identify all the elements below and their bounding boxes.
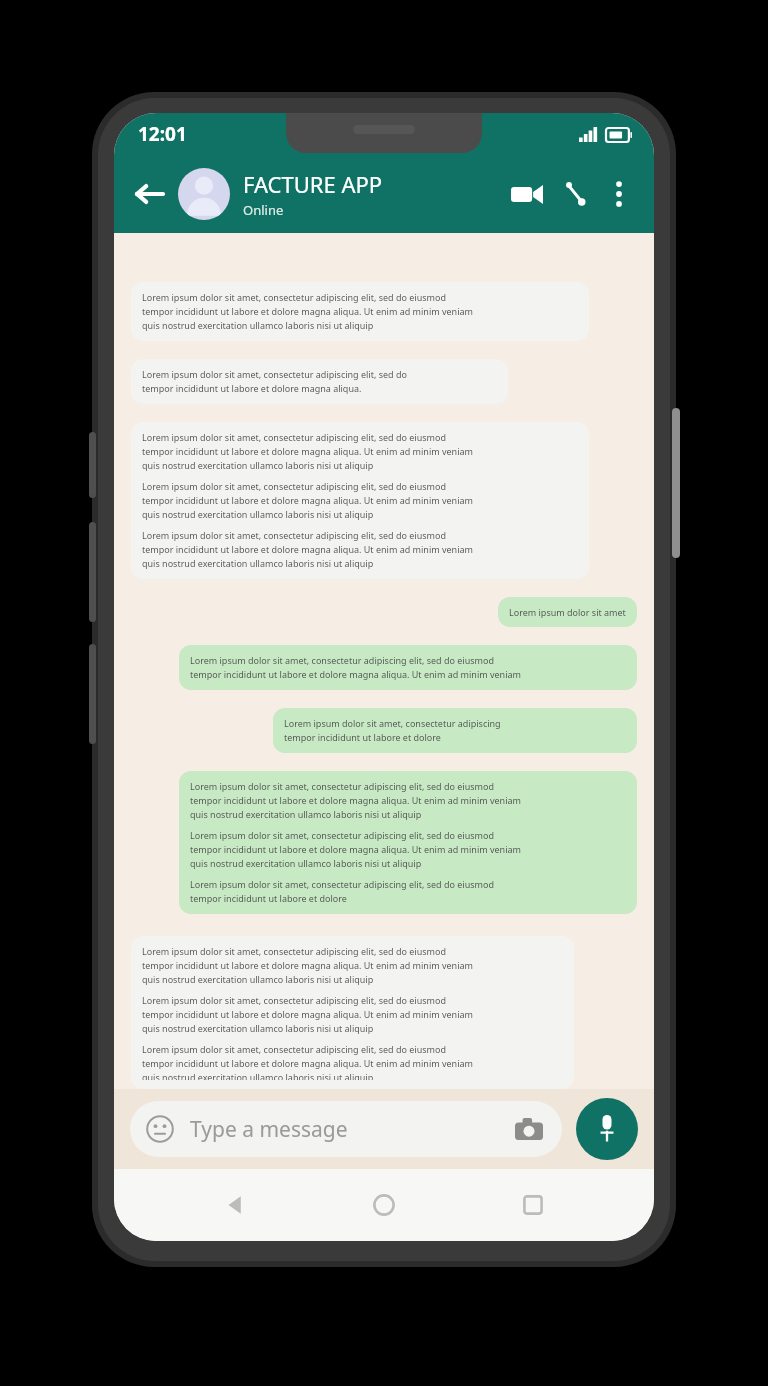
staticText: Lorem ipsum dolor sit amet, consectetur … [190,654,521,681]
staticText: Lorem ipsum dolor sit amet, consectetur … [142,431,473,472]
button[interactable]: Lorem ipsum dolor sit amet, consectetur … [179,645,637,690]
button[interactable]: More options [600,175,638,213]
button[interactable]: Lorem ipsum dolor sit amet, consectetur … [131,359,508,404]
staticText: Online [243,201,284,219]
button[interactable]: Recent apps [505,1177,561,1233]
staticText: FACTURE APP [243,169,383,199]
button[interactable]: Lorem ipsum dolor sit amet, consectetur … [179,771,637,914]
button[interactable]: Back [128,173,170,215]
staticText: Lorem ipsum dolor sit amet, consectetur … [142,529,473,570]
staticText: Lorem ipsum dolor sit amet, consectetur … [142,945,473,986]
button[interactable]: Contact photo [178,168,230,220]
button[interactable]: Home [356,1177,412,1233]
button[interactable]: Record voice message [576,1098,638,1160]
staticText: Lorem ipsum dolor sit amet, consectetur … [142,994,473,1035]
button[interactable]: Lorem ipsum dolor sit amet, consectetur … [131,282,589,341]
button[interactable]: Back [207,1177,263,1233]
button[interactable]: Voice call [554,173,596,215]
button[interactable]: Type a message [130,1101,562,1157]
staticText: Lorem ipsum dolor sit amet [509,606,626,618]
staticText: Lorem ipsum dolor sit amet, consectetur … [142,1043,473,1080]
staticText: Type a message [190,1115,512,1144]
staticText: Lorem ipsum dolor sit amet, consectetur … [190,878,494,905]
staticText: Lorem ipsum dolor sit amet, consectetur … [190,829,521,870]
staticText: Lorem ipsum dolor sit amet, consectetur … [142,291,473,332]
staticText: Lorem ipsum dolor sit amet, consectetur … [190,780,521,821]
button[interactable]: Video call [506,173,548,215]
button[interactable]: Lorem ipsum dolor sit amet, consectetur … [131,422,589,579]
button[interactable]: Lorem ipsum dolor sit amet [498,597,637,627]
staticText: Lorem ipsum dolor sit amet, consectetur … [284,717,501,744]
button[interactable]: Lorem ipsum dolor sit amet, consectetur … [273,708,637,753]
staticText: Lorem ipsum dolor sit amet, consectetur … [142,480,473,521]
button[interactable]: Camera [512,1112,546,1146]
button[interactable]: FACTURE APP [243,169,506,219]
staticText: 12:01 [138,121,187,147]
button[interactable]: Lorem ipsum dolor sit amet, consectetur … [131,936,574,1089]
staticText: Lorem ipsum dolor sit amet, consectetur … [142,368,407,395]
